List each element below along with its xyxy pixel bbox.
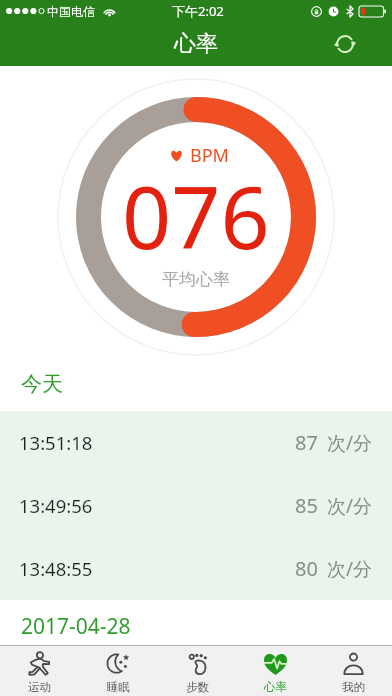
button[interactable]: Refresh [331,29,361,59]
staticText: 次/分 [327,493,373,519]
button[interactable]: 步数 [158,646,236,696]
button[interactable]: 13:51:18 [0,411,392,474]
staticText: 13:51:18 [19,430,93,455]
staticText: 次/分 [327,556,373,582]
button[interactable]: 运动 [0,646,79,696]
button[interactable]: 睡眠 [79,646,158,696]
staticText: 80 [295,555,318,582]
staticText: 076 [122,157,270,274]
staticText: 平均心率 [162,269,230,290]
button[interactable]: 13:48:55 [0,537,392,600]
staticText: 步数 [186,680,209,694]
staticText: 心率 [174,30,218,58]
staticText: 13:48:55 [19,556,93,581]
staticText: 次/分 [327,430,373,456]
staticText: 87 [295,429,318,456]
staticText: BPM [190,143,229,168]
staticText: 心率 [264,680,287,694]
staticText: 2017-04-28 [21,612,131,641]
button[interactable]: 13:49:56 [0,474,392,537]
staticText: 我的 [342,680,365,694]
button[interactable]: 心率 [236,646,314,696]
button[interactable]: 我的 [314,646,392,696]
staticText: 今天 [21,371,63,397]
staticText: 运动 [28,680,51,694]
staticText: 13:49:56 [19,493,93,518]
staticText: 中国电信 [47,4,95,19]
staticText: 睡眠 [107,680,130,694]
staticText: 85 [295,492,318,519]
staticText: 下午2:02 [172,2,224,20]
